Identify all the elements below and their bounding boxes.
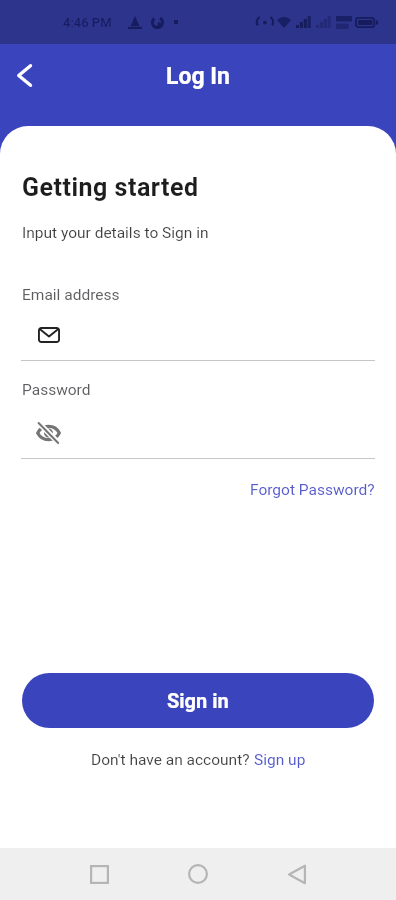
button[interactable]: Back [264,848,330,900]
button[interactable]: Email [30,327,68,343]
staticText: 4:46 PM [63,15,112,30]
button[interactable]: Sign in [22,673,374,728]
button[interactable]: Back [2,53,46,97]
staticText: Don't have an account? [91,751,254,769]
staticText: Input your details to Sign in [22,224,209,242]
button[interactable]: Forgot Password? [250,481,375,499]
staticText: Sign in [167,689,229,712]
button[interactable]: Recents [66,848,132,900]
button[interactable]: Home [165,848,231,900]
staticText: Email address [22,286,120,304]
button[interactable]: Sign up [254,751,306,769]
staticText: Password [22,381,91,399]
staticText: Getting started [22,173,199,202]
button[interactable]: Show password [29,422,69,443]
staticText: Log In [166,63,230,90]
